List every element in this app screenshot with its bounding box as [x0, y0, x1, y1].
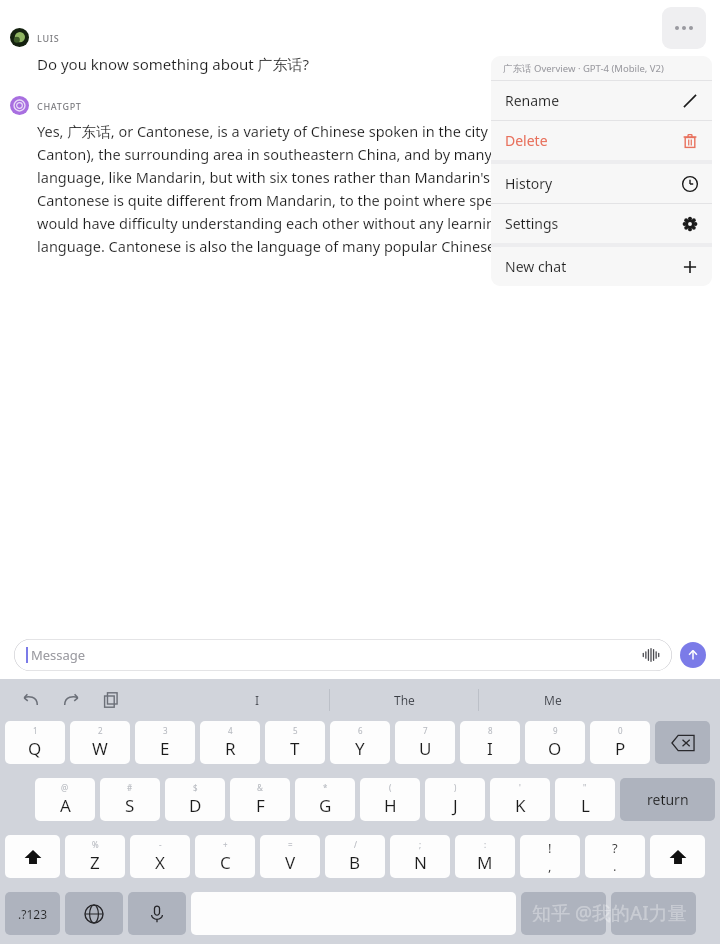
button[interactable]: New chat: [491, 247, 712, 286]
staticText: L: [581, 794, 590, 817]
staticText: Cantonese is quite different from Mandar…: [37, 190, 510, 210]
button[interactable]: ': [490, 778, 550, 821]
button[interactable]: :: [455, 835, 515, 878]
staticText: J: [453, 794, 458, 817]
button[interactable]: -: [130, 835, 190, 878]
button[interactable]: (: [360, 778, 420, 821]
button[interactable]: Redo: [58, 687, 84, 713]
staticText: *: [323, 782, 328, 793]
button[interactable]: ;: [390, 835, 450, 878]
staticText: =: [288, 839, 293, 850]
button[interactable]: =: [260, 835, 320, 878]
button[interactable]: History: [491, 164, 712, 203]
button[interactable]: More options: [662, 7, 706, 49]
staticText: would have difficulty understanding each…: [37, 213, 504, 233]
staticText: V: [285, 851, 296, 874]
staticText: 6: [358, 725, 363, 736]
staticText: Canton), the surrounding area in southea…: [37, 144, 505, 164]
staticText: ): [454, 782, 457, 793]
staticText: language. Cantonese is also the language…: [37, 236, 496, 256]
button[interactable]: /: [325, 835, 385, 878]
button[interactable]: 0: [590, 721, 650, 764]
staticText: &: [257, 782, 263, 793]
staticText: Message: [31, 646, 86, 664]
button[interactable]: 5: [265, 721, 325, 764]
staticText: W: [92, 737, 108, 760]
staticText: LUIS: [37, 32, 60, 44]
button[interactable]: [128, 892, 186, 935]
staticText: K: [515, 794, 526, 817]
staticText: 知乎 @我的AI力量: [532, 900, 687, 926]
button[interactable]: 6: [330, 721, 390, 764]
button[interactable]: ": [555, 778, 615, 821]
button[interactable]: [650, 835, 705, 878]
staticText: -: [159, 839, 162, 850]
staticText: %: [92, 839, 99, 850]
button[interactable]: %: [65, 835, 125, 878]
button[interactable]: Delete: [491, 121, 712, 160]
button[interactable]: Message: [14, 639, 672, 671]
button[interactable]: 1: [5, 721, 65, 764]
staticText: language, like Mandarin, but with six to…: [37, 167, 508, 187]
staticText: N: [414, 851, 427, 874]
button[interactable]: Paste: [98, 687, 124, 713]
button[interactable]: Me: [479, 679, 627, 721]
staticText: @: [61, 782, 69, 793]
staticText: 7: [423, 725, 428, 736]
staticText: :: [484, 839, 487, 850]
staticText: #: [127, 782, 133, 793]
button[interactable]: 2: [70, 721, 130, 764]
staticText: +: [223, 839, 228, 850]
staticText: 4: [228, 725, 233, 736]
staticText: 8: [488, 725, 493, 736]
staticText: I: [487, 737, 493, 760]
button[interactable]: Undo: [18, 687, 44, 713]
button[interactable]: Rename: [491, 81, 712, 120]
button[interactable]: I: [186, 679, 329, 721]
button[interactable]: return: [620, 778, 715, 821]
staticText: !: [548, 839, 552, 857]
button[interactable]: [655, 721, 710, 764]
button[interactable]: 7: [395, 721, 455, 764]
button[interactable]: *: [295, 778, 355, 821]
button[interactable]: #: [100, 778, 160, 821]
button[interactable]: [521, 892, 606, 935]
button[interactable]: [611, 892, 696, 935]
button[interactable]: 9: [525, 721, 585, 764]
staticText: M: [477, 851, 493, 874]
button[interactable]: ): [425, 778, 485, 821]
button[interactable]: 3: [135, 721, 195, 764]
staticText: ?: [612, 839, 618, 857]
staticText: Rename: [505, 91, 560, 110]
staticText: B: [349, 851, 361, 874]
staticText: New chat: [505, 257, 567, 276]
staticText: 1: [33, 725, 38, 736]
staticText: .: [613, 857, 617, 875]
staticText: 9: [553, 725, 558, 736]
button[interactable]: .?123: [5, 892, 60, 935]
button[interactable]: $: [165, 778, 225, 821]
staticText: H: [384, 794, 397, 817]
button[interactable]: [65, 892, 123, 935]
button[interactable]: 4: [200, 721, 260, 764]
button[interactable]: ?: [585, 835, 645, 878]
button[interactable]: !: [520, 835, 580, 878]
staticText: 2: [98, 725, 103, 736]
staticText: E: [160, 737, 170, 760]
staticText: O: [548, 737, 562, 760]
staticText: ,: [548, 857, 552, 875]
button[interactable]: [5, 835, 60, 878]
staticText: (: [389, 782, 392, 793]
button[interactable]: The: [330, 679, 478, 721]
button[interactable]: @: [35, 778, 95, 821]
staticText: Q: [28, 737, 42, 760]
staticText: $: [193, 782, 198, 793]
staticText: Me: [544, 692, 562, 708]
button[interactable]: &: [230, 778, 290, 821]
button[interactable]: Send: [680, 642, 706, 668]
staticText: 3: [163, 725, 168, 736]
button[interactable]: Settings: [491, 204, 712, 243]
button[interactable]: +: [195, 835, 255, 878]
button[interactable]: 8: [460, 721, 520, 764]
